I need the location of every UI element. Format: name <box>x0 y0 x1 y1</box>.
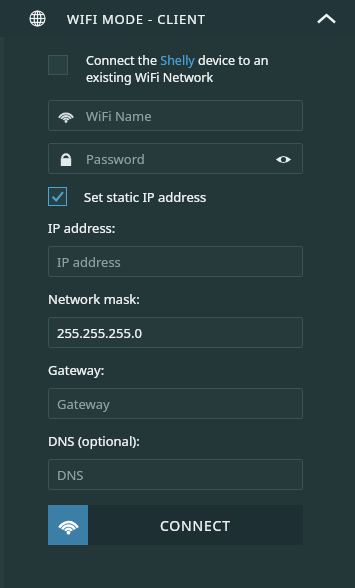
button[interactable]: Show password <box>272 148 294 170</box>
staticText: Network mask: <box>48 290 140 308</box>
staticText: IP address <box>57 253 121 271</box>
staticText: 255.255.255.0 <box>57 324 142 342</box>
staticText: Gateway: <box>48 361 105 379</box>
button[interactable]: IP address <box>48 246 303 277</box>
staticText: Gateway <box>57 395 110 413</box>
button[interactable]: Password <box>48 143 303 174</box>
button[interactable]: Gateway <box>48 388 303 419</box>
staticText: WIFI MODE - CLIENT <box>67 10 206 28</box>
button[interactable]: Set static IP address <box>48 187 303 206</box>
button[interactable]: Collapse section <box>309 2 343 36</box>
button[interactable]: DNS <box>48 459 303 490</box>
button[interactable]: Connect the Shelly device to an existing… <box>48 52 303 86</box>
staticText: DNS (optional): <box>48 432 140 450</box>
button[interactable]: Network <box>0 0 355 37</box>
button[interactable]: 255.255.255.0 <box>48 317 303 348</box>
staticText: WiFi Name <box>86 107 152 125</box>
other: Network <box>29 10 46 27</box>
staticText: Connect the Shelly device to an existing… <box>86 52 303 86</box>
staticText: DNS <box>57 466 84 484</box>
button[interactable]: WiFi Name <box>48 100 303 131</box>
staticText: Password <box>86 150 145 168</box>
staticText: CONNECT <box>160 516 231 535</box>
staticText: IP address: <box>48 219 116 237</box>
button[interactable]: CONNECT <box>48 505 303 545</box>
staticText: Set static IP address <box>84 188 207 206</box>
